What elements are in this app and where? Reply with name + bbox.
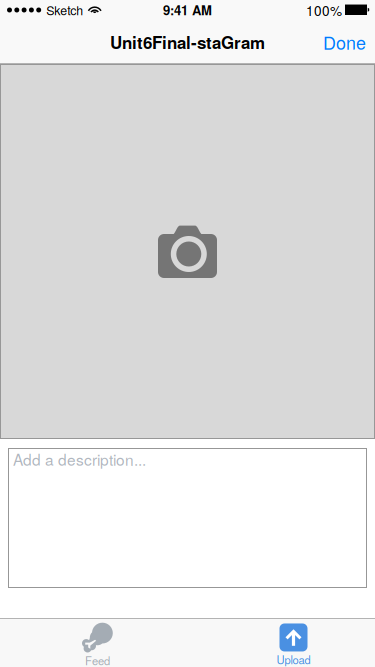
staticText: Upload bbox=[276, 651, 310, 667]
staticText: 100% bbox=[306, 0, 342, 20]
staticText: 9:41 AM bbox=[163, 1, 212, 19]
staticText: Feed bbox=[85, 652, 110, 667]
button[interactable]: Done bbox=[314, 18, 375, 66]
button[interactable]: Feed bbox=[42, 618, 153, 667]
button[interactable]: Upload bbox=[238, 618, 349, 667]
staticText: Add a description... bbox=[13, 448, 146, 470]
staticText: Sketch bbox=[46, 1, 83, 19]
staticText: Done bbox=[323, 29, 366, 55]
staticText: Unit6Final-staGram bbox=[110, 30, 265, 54]
